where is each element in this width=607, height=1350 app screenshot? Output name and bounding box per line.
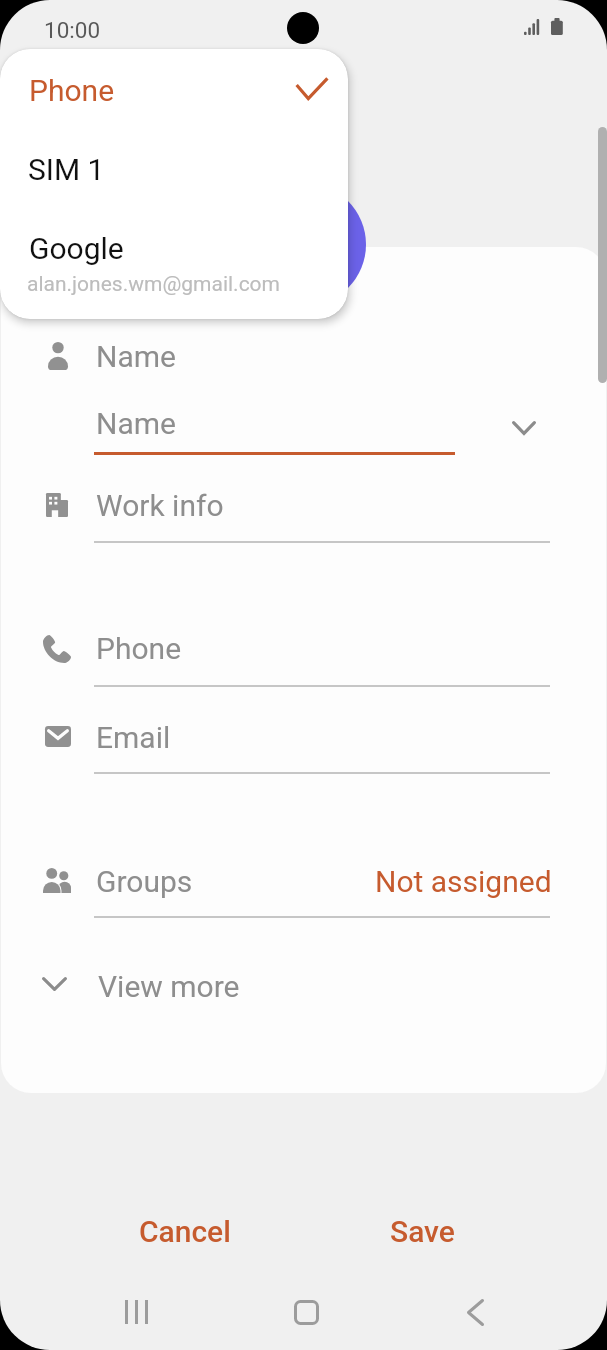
button[interactable]: Recents (101, 1282, 171, 1342)
staticText: Work info (96, 488, 224, 523)
button[interactable]: Google (0, 209, 348, 319)
staticText: alan.jones.wm@gmail.com (27, 272, 281, 297)
staticText: Cancel (139, 1214, 231, 1249)
button[interactable] (20, 852, 580, 918)
button[interactable]: Save (345, 1205, 500, 1257)
staticText: Phone (29, 73, 115, 108)
button[interactable]: Phone (0, 49, 348, 129)
staticText: Name (96, 406, 176, 441)
staticText: View more (98, 969, 240, 1004)
staticText: SIM 1 (28, 152, 105, 187)
button[interactable] (20, 712, 580, 774)
button[interactable] (20, 622, 580, 688)
button[interactable]: Back (440, 1282, 510, 1342)
staticText: Name (96, 339, 176, 374)
staticText: Email (96, 720, 171, 755)
staticText: Phone (96, 631, 182, 666)
button[interactable] (20, 478, 580, 544)
button[interactable]: Home (271, 1282, 341, 1342)
button[interactable]: SIM 1 (0, 129, 348, 209)
staticText: Save (390, 1214, 455, 1249)
staticText: Google (29, 231, 124, 266)
button[interactable] (20, 320, 580, 390)
staticText: Not assigned (375, 864, 552, 899)
button[interactable]: Cancel (95, 1205, 275, 1257)
staticText: 10:00 (44, 17, 101, 43)
button[interactable] (20, 955, 580, 1017)
button[interactable]: Name options (496, 404, 552, 452)
staticText: Groups (96, 864, 193, 899)
